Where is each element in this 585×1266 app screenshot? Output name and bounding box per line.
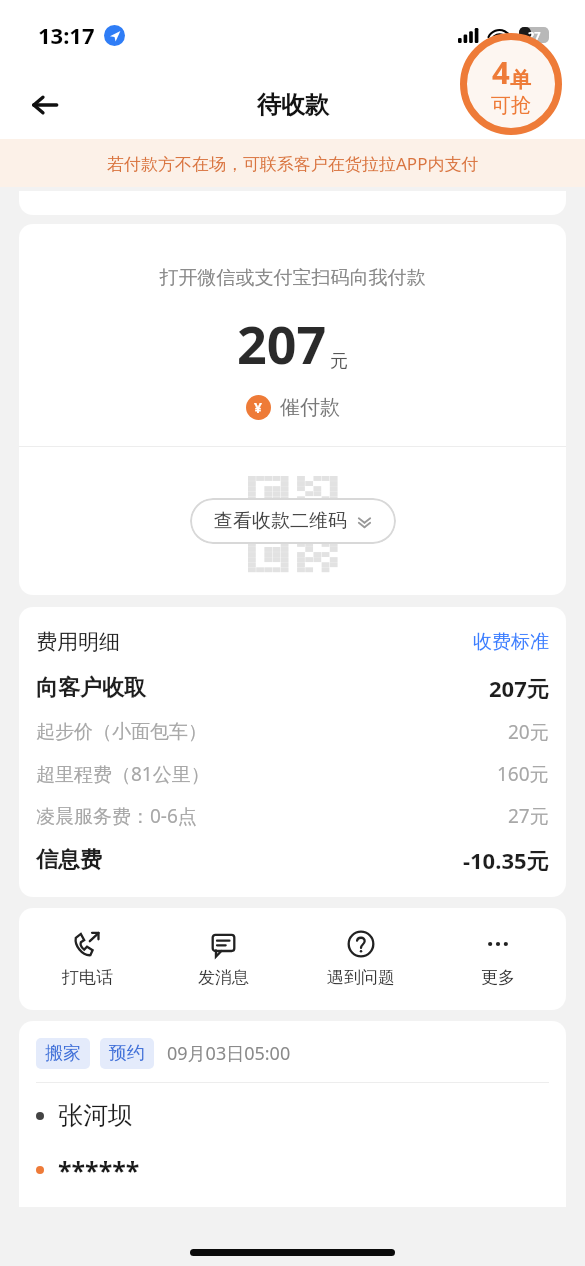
staticText: 打开微信或支付宝扫码向我付款 xyxy=(19,266,566,290)
staticText: 4 xyxy=(492,51,510,93)
button[interactable]: Back xyxy=(22,82,68,128)
staticText: 207元 xyxy=(489,673,549,703)
staticText: 费用明细 xyxy=(36,629,120,655)
staticText: 查看收款二维码 xyxy=(214,509,347,533)
staticText: -10.35元 xyxy=(463,845,549,875)
button[interactable]: 搬家 xyxy=(19,1021,566,1207)
staticText: 09月03日05:00 xyxy=(167,1041,291,1066)
staticText: 元 xyxy=(330,350,348,373)
staticText: 单 xyxy=(510,67,531,93)
staticText: 搬家 xyxy=(45,1042,81,1065)
staticText: 可抢 xyxy=(491,93,531,118)
staticText: ****** xyxy=(58,1153,140,1187)
button[interactable]: 遇到问题 xyxy=(292,908,429,1010)
staticText: 张河坝 xyxy=(58,1100,133,1131)
staticText: 27元 xyxy=(508,803,549,829)
staticText: 打电话 xyxy=(62,967,113,988)
staticText: 160元 xyxy=(497,761,549,787)
staticText: 催付款 xyxy=(280,395,340,420)
staticText: 超里程费（81公里） xyxy=(36,761,210,787)
staticText: ¥ xyxy=(254,398,263,417)
staticText: 207 xyxy=(237,308,327,379)
staticText: 遇到问题 xyxy=(327,967,395,988)
button[interactable]: 4单可抢 xyxy=(459,32,563,136)
button[interactable]: 更多 xyxy=(429,908,566,1010)
staticText: 更多 xyxy=(481,967,515,988)
button[interactable]: 收费标准 xyxy=(473,630,549,654)
staticText: 13:17 xyxy=(38,20,95,50)
staticText: 预约 xyxy=(109,1042,145,1065)
staticText: 凌晨服务费：0-6点 xyxy=(36,803,197,829)
button[interactable]: 发消息 xyxy=(155,908,292,1010)
staticText: 向客户收取 xyxy=(36,674,146,702)
staticText: 待收款 xyxy=(257,90,329,120)
staticText: 20元 xyxy=(508,719,549,745)
staticText: 27 xyxy=(528,28,541,43)
staticText: 发消息 xyxy=(198,967,249,988)
staticText: 若付款方不在场，可联系客户在货拉拉APP内支付 xyxy=(107,152,479,175)
staticText: 信息费 xyxy=(36,846,102,874)
staticText: 收费标准 xyxy=(473,630,549,654)
button[interactable]: ¥ xyxy=(19,395,566,420)
button[interactable]: 查看收款二维码 xyxy=(190,498,396,544)
button[interactable]: 打电话 xyxy=(19,908,155,1010)
staticText: 起步价（小面包车） xyxy=(36,720,207,744)
